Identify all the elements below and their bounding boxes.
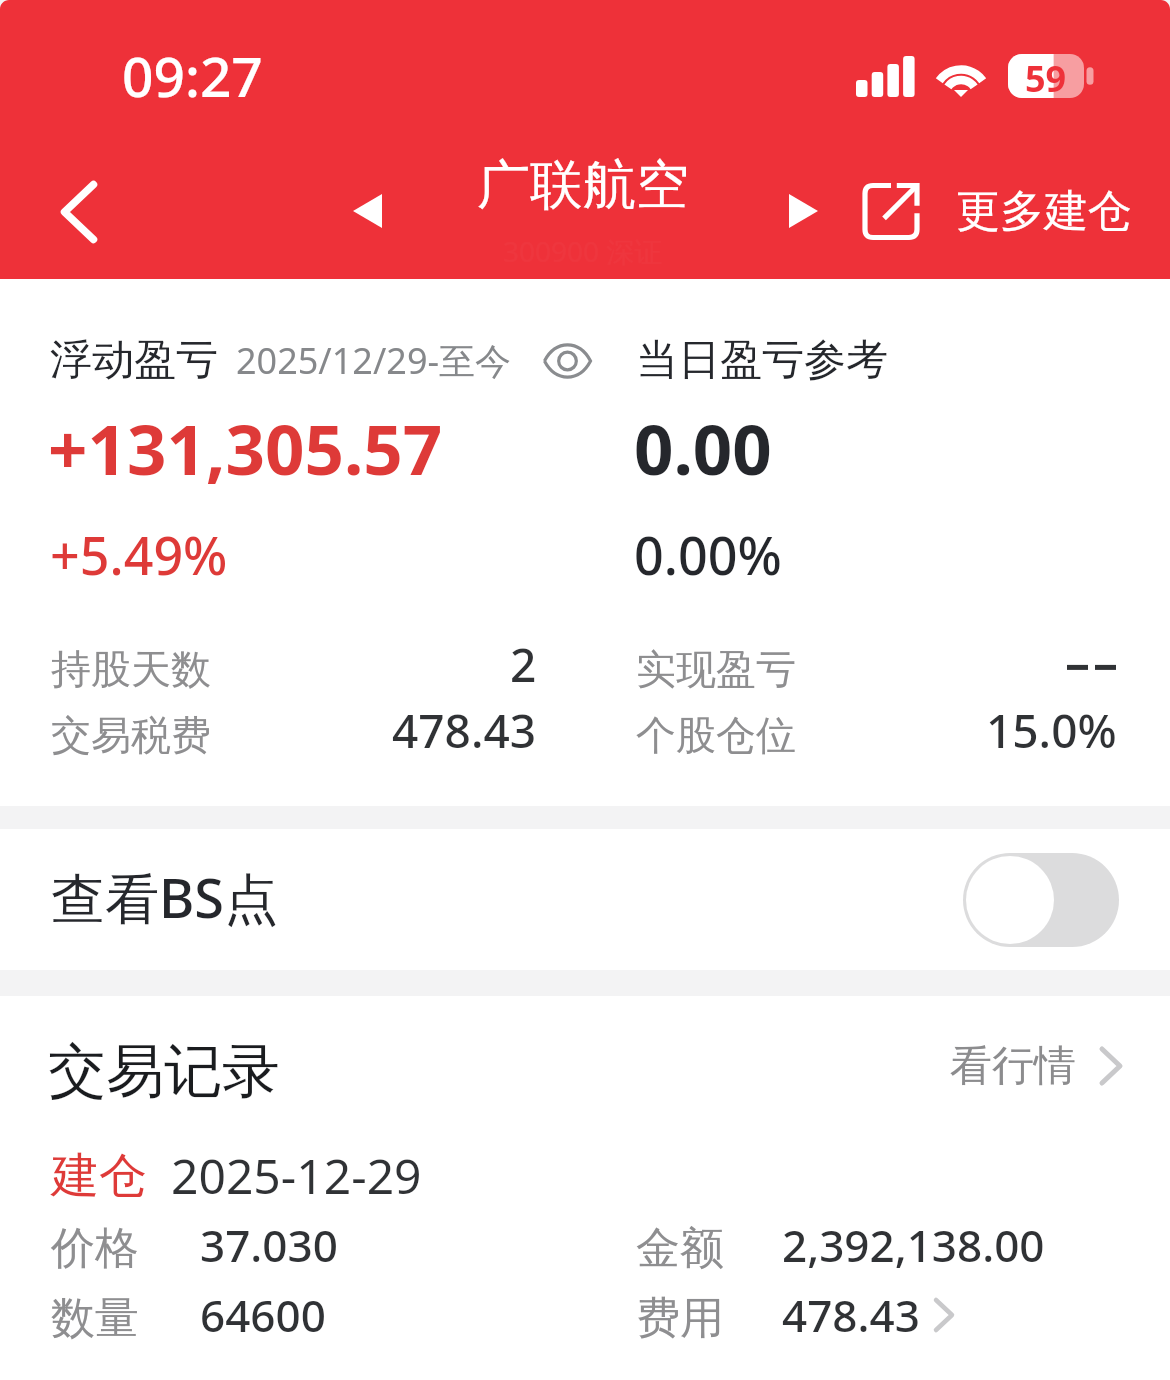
- staticText: 交易记录: [48, 1035, 280, 1108]
- staticText: 金额: [636, 1221, 724, 1276]
- staticText: 15.0%: [986, 699, 1117, 762]
- staticText: 看行情: [950, 1040, 1076, 1093]
- staticText: 2,392,138.00: [782, 1215, 1045, 1275]
- staticText: 37.030: [200, 1215, 338, 1275]
- staticText: 持股天数: [51, 644, 211, 694]
- staticText: +5.49%: [50, 519, 228, 590]
- staticText: 2: [510, 633, 537, 696]
- staticText: 478.43: [392, 699, 537, 762]
- staticText: 59: [1025, 54, 1067, 98]
- button[interactable]: Next stock: [759, 166, 849, 256]
- staticText: 实现盈亏: [636, 644, 796, 694]
- staticText: 价格: [51, 1221, 139, 1276]
- staticText: 0.00%: [634, 519, 782, 590]
- staticText: 费用: [636, 1291, 724, 1346]
- staticText: 2025/12/29-至今: [236, 336, 512, 385]
- staticText: 478.43: [782, 1285, 920, 1345]
- staticText: 2025-12-29: [171, 1143, 422, 1208]
- button[interactable]: Show BS points switch, off: [963, 853, 1119, 947]
- button[interactable]: 更多建仓: [862, 172, 1132, 250]
- staticText: +131,305.57: [48, 401, 443, 495]
- button[interactable]: Toggle amount visibility: [542, 336, 592, 386]
- staticText: 09:27: [122, 38, 263, 113]
- staticText: 数量: [51, 1291, 139, 1346]
- staticText: 64600: [200, 1285, 326, 1345]
- staticText: 浮动盈亏: [50, 334, 218, 387]
- staticText: 0.00: [634, 401, 772, 495]
- staticText: 查看BS点: [51, 860, 279, 934]
- staticText: 广联航空: [477, 152, 689, 219]
- button[interactable]: 看行情: [950, 1030, 1122, 1102]
- button[interactable]: Previous stock: [322, 166, 412, 256]
- staticText: 当日盈亏参考: [636, 334, 888, 387]
- staticText: 更多建仓: [956, 184, 1132, 239]
- staticText: 交易税费: [51, 710, 211, 760]
- staticText: 建仓: [51, 1146, 147, 1206]
- button[interactable]: 查看BS点: [0, 829, 1170, 970]
- button[interactable]: Back: [24, 157, 134, 267]
- button[interactable]: 建仓: [0, 1130, 1170, 1360]
- staticText: 个股仓位: [636, 710, 796, 760]
